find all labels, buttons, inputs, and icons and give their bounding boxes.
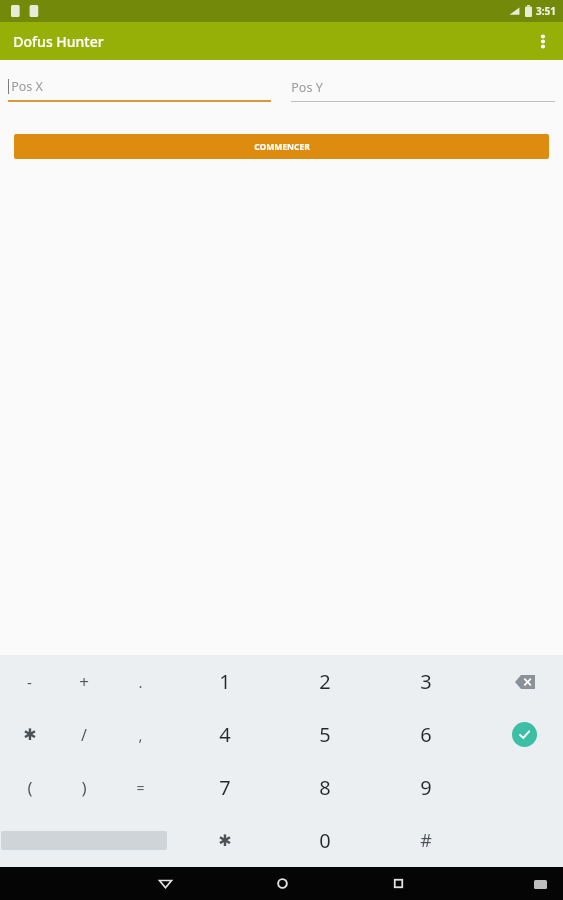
button[interactable]: 9 — [395, 761, 456, 814]
button[interactable]: Back — [142, 868, 188, 899]
button[interactable]: 0 — [294, 814, 355, 867]
button[interactable]: Switch keyboard — [528, 872, 552, 896]
staticText: - — [27, 672, 32, 692]
staticText: 8 — [319, 774, 331, 801]
button[interactable]: Home — [259, 868, 305, 899]
staticText: 5 — [319, 721, 331, 748]
button[interactable]: COMMENCER — [14, 134, 549, 159]
staticText: ) — [81, 776, 87, 799]
button[interactable]: 2 — [294, 655, 355, 708]
button[interactable]: Pos X — [8, 72, 271, 102]
staticText: ✱ — [23, 725, 37, 744]
button[interactable]: ✱ — [194, 814, 255, 867]
staticText: 0 — [319, 827, 331, 854]
staticText: Pos X — [11, 78, 43, 95]
button[interactable]: Delete — [488, 655, 561, 708]
button[interactable]: . — [110, 655, 171, 708]
button[interactable]: / — [53, 708, 114, 761]
staticText: ✱ — [218, 831, 232, 850]
button[interactable]: 1 — [194, 655, 255, 708]
button[interactable]: Enter — [488, 708, 561, 761]
button[interactable]: ( — [0, 761, 60, 814]
button[interactable]: ✱ — [0, 708, 60, 761]
button[interactable]: 5 — [294, 708, 355, 761]
staticText: 1 — [219, 668, 231, 695]
staticText: = — [136, 778, 145, 797]
staticText: + — [79, 670, 89, 693]
staticText: 4 — [219, 721, 231, 748]
staticText: COMMENCER — [254, 141, 310, 153]
button[interactable]: Pos Y — [291, 72, 555, 102]
button[interactable]: More options — [523, 22, 563, 60]
button[interactable]: # — [395, 814, 456, 867]
staticText: 2 — [319, 668, 331, 695]
staticText: 3:51 — [536, 4, 556, 18]
button[interactable]: 6 — [395, 708, 456, 761]
staticText: Dofus Hunter — [13, 32, 104, 51]
staticText: . — [138, 672, 143, 692]
button[interactable]: , — [110, 708, 171, 761]
button[interactable]: = — [110, 761, 171, 814]
staticText: 7 — [219, 774, 231, 801]
button[interactable]: 7 — [194, 761, 255, 814]
staticText: Pos Y — [291, 79, 323, 96]
staticText: ( — [27, 776, 33, 799]
button[interactable]: - — [0, 655, 60, 708]
button[interactable]: 4 — [194, 708, 255, 761]
button[interactable]: Recent apps — [375, 868, 421, 899]
staticText: 6 — [420, 721, 432, 748]
staticText: , — [138, 725, 143, 745]
staticText: 3 — [420, 668, 432, 695]
staticText: # — [420, 828, 432, 853]
staticText: / — [81, 724, 87, 746]
button[interactable]: ) — [53, 761, 114, 814]
button[interactable]: 8 — [294, 761, 355, 814]
button[interactable]: + — [53, 655, 114, 708]
staticText: 9 — [420, 774, 432, 801]
button[interactable]: 3 — [395, 655, 456, 708]
